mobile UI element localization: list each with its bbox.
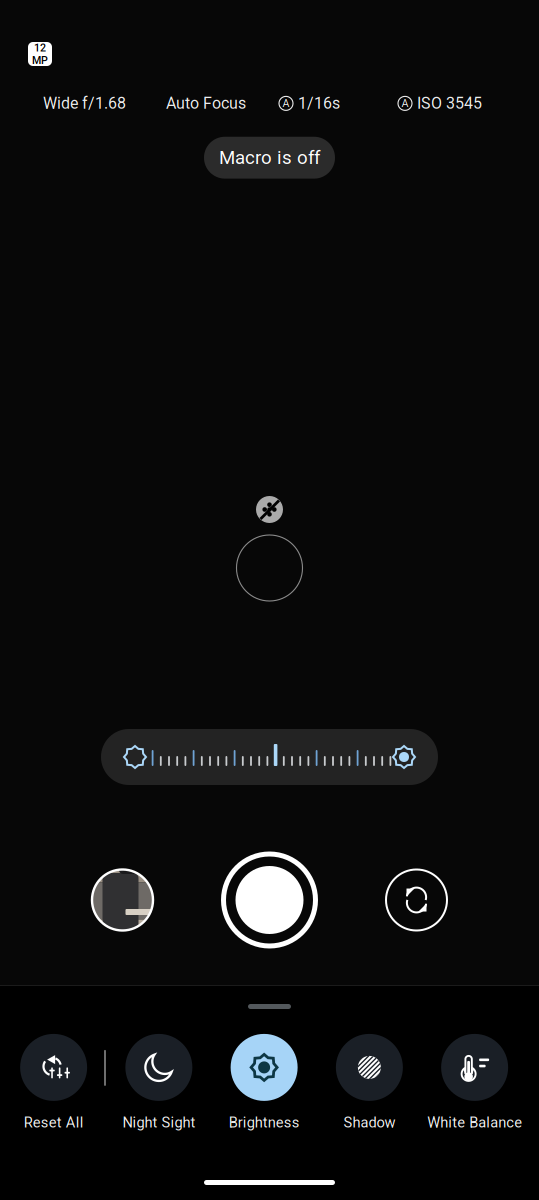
staticText: MP	[32, 54, 48, 66]
button[interactable]: Take photo	[223, 854, 315, 946]
button[interactable]: Last photo	[92, 869, 153, 930]
staticText: Night Sight	[122, 1114, 195, 1131]
staticText: White Balance	[427, 1114, 522, 1131]
button[interactable]: Shadow	[317, 1034, 422, 1131]
button[interactable]: Resolution: 12 megapixels	[28, 42, 52, 66]
button[interactable]: Reset All	[1, 1034, 106, 1131]
button[interactable]: Night Sight	[106, 1034, 211, 1131]
staticText: ISO 3545	[417, 94, 482, 113]
staticText: Shadow	[343, 1114, 395, 1131]
staticText: Macro is off	[219, 147, 320, 169]
staticText: A	[282, 97, 289, 110]
staticText: Wide f/1.68	[43, 94, 126, 113]
staticText: Auto Focus	[166, 94, 246, 113]
button[interactable]: Switch camera	[386, 869, 447, 930]
button[interactable]: White Balance	[422, 1034, 527, 1131]
staticText: 1/16s	[298, 94, 340, 113]
staticText: 12	[34, 41, 46, 54]
button[interactable]: Brightness	[211, 1034, 317, 1131]
staticText: Brightness	[229, 1114, 300, 1131]
staticText: Reset All	[24, 1114, 84, 1131]
staticText: A	[401, 97, 408, 110]
